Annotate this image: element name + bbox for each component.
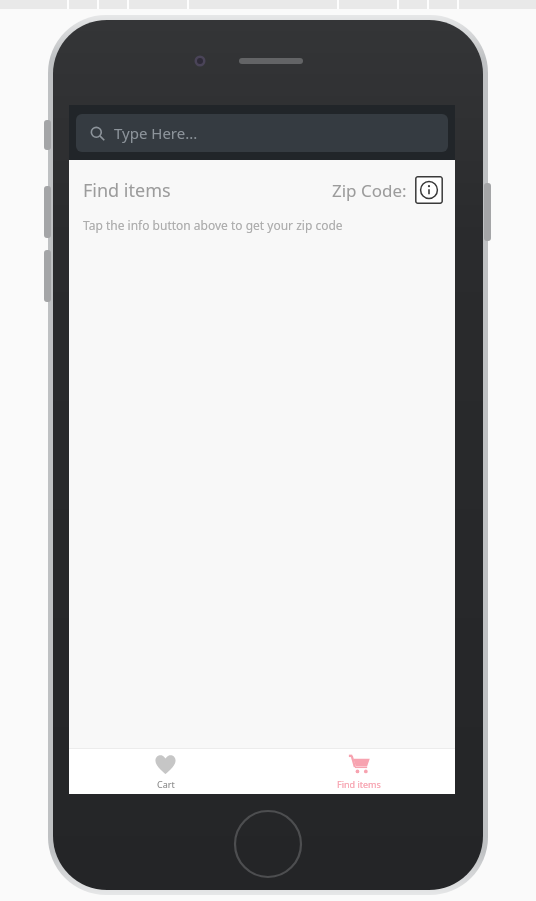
button[interactable]: Type Here... [76,114,448,152]
staticText: Zip Code: [332,179,407,202]
staticText: Find items [83,178,171,203]
button[interactable]: Find items [262,749,455,794]
staticText: Find items [337,778,381,790]
button[interactable]: Get zip code info [415,176,443,204]
button[interactable]: Cart [69,749,262,794]
staticText: Type Here... [114,123,198,143]
staticText: Tap the info button above to get your zi… [83,217,343,233]
staticText: Cart [157,778,175,790]
